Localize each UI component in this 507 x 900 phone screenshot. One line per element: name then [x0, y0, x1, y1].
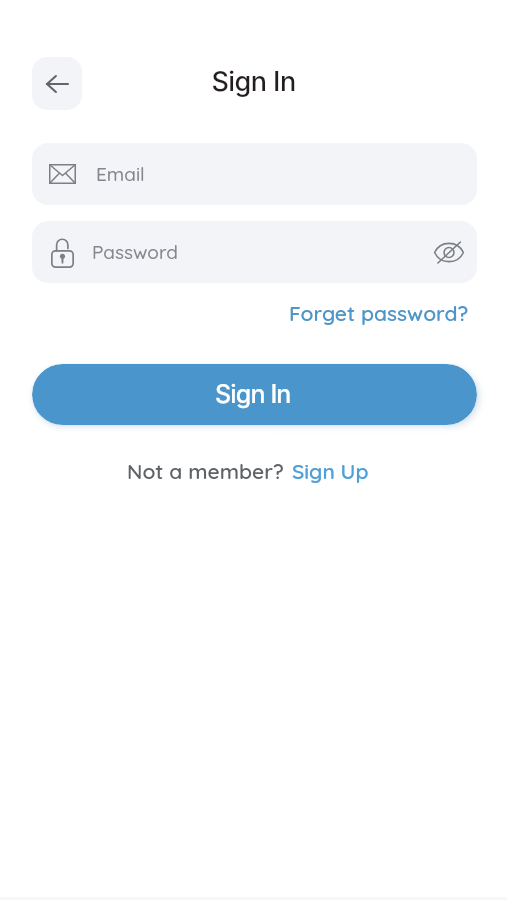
- button[interactable]: Sign In: [32, 364, 477, 425]
- button[interactable]: Password: [32, 221, 477, 283]
- staticText: Forget password?: [289, 300, 469, 326]
- button[interactable]: Show password: [427, 234, 463, 270]
- staticText: Email: [96, 162, 145, 186]
- staticText: Sign In: [215, 379, 291, 409]
- staticText: Sign In: [0, 65, 507, 98]
- button[interactable]: Back: [32, 57, 82, 110]
- staticText: Password: [92, 240, 178, 264]
- button[interactable]: Sign Up: [292, 458, 369, 484]
- button[interactable]: Forget password?: [285, 300, 473, 326]
- staticText: Sign Up: [292, 458, 369, 484]
- staticText: Not a member?: [127, 458, 284, 484]
- button[interactable]: Email: [32, 143, 477, 205]
